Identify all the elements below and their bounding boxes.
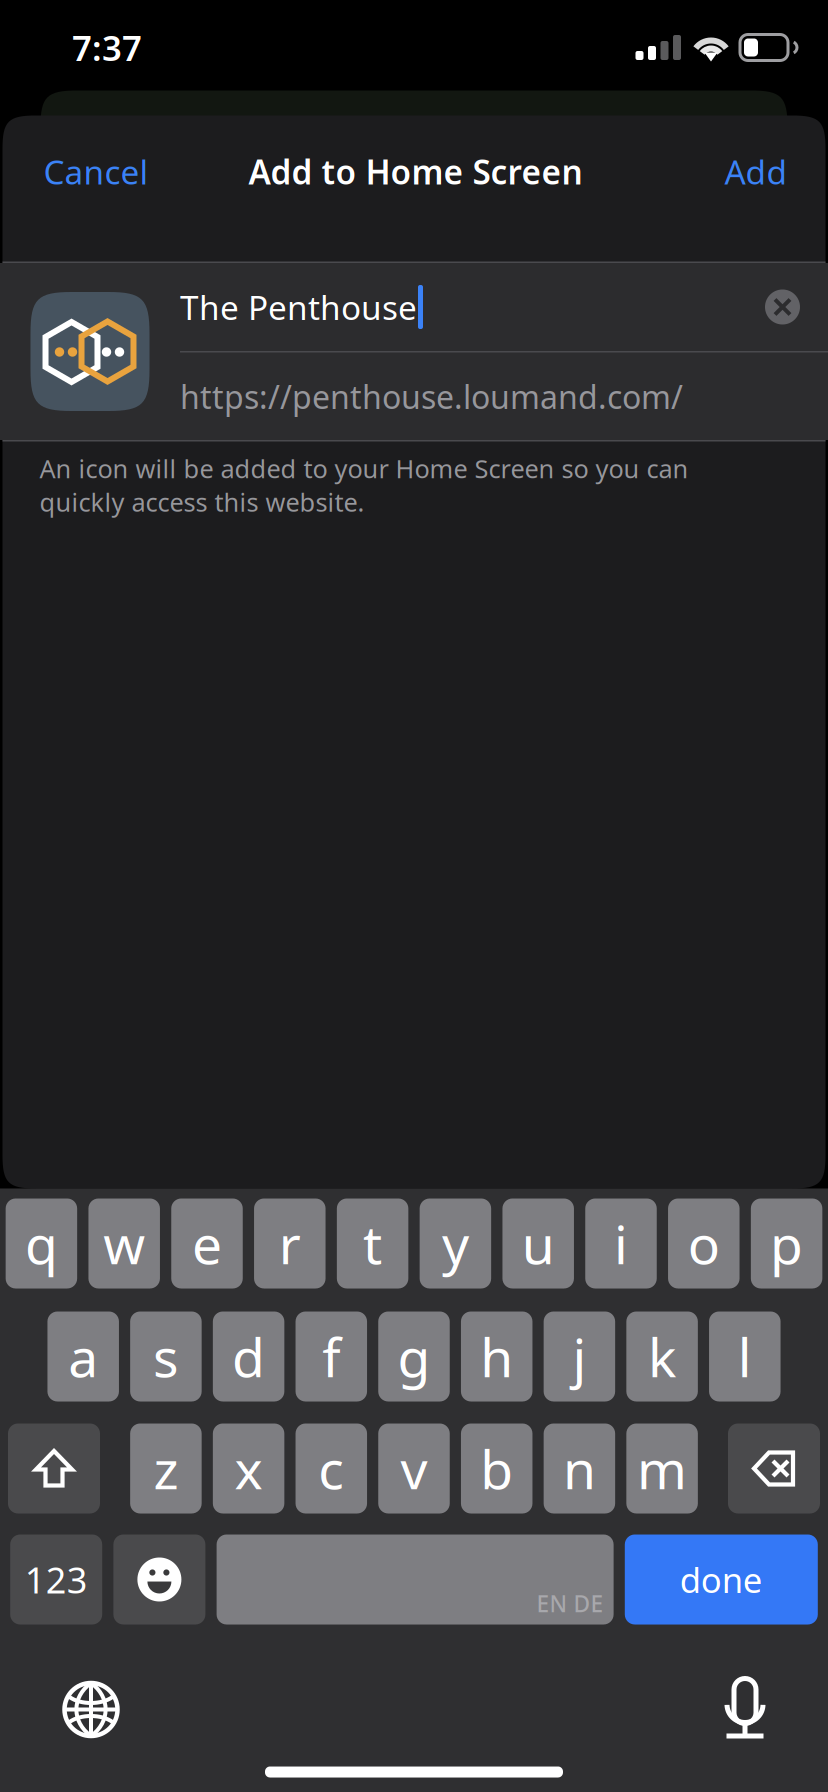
button[interactable]: t bbox=[337, 1198, 408, 1288]
staticText: i bbox=[614, 1208, 628, 1279]
staticText: t bbox=[363, 1208, 382, 1279]
staticText: j bbox=[572, 1321, 586, 1392]
button[interactable]: i bbox=[585, 1198, 657, 1288]
staticText: m bbox=[637, 1433, 687, 1504]
button[interactable]: y bbox=[420, 1198, 491, 1288]
button[interactable]: h bbox=[461, 1311, 532, 1401]
button[interactable]: c bbox=[295, 1423, 367, 1513]
button[interactable]: o bbox=[668, 1198, 739, 1288]
staticText: g bbox=[397, 1321, 430, 1392]
button[interactable]: w bbox=[88, 1198, 160, 1288]
button[interactable]: z bbox=[130, 1423, 202, 1513]
staticText: u bbox=[522, 1208, 555, 1279]
staticText: The Penthouse bbox=[180, 285, 417, 329]
button[interactable]: d bbox=[213, 1311, 284, 1401]
staticText: a bbox=[68, 1321, 98, 1392]
staticText: h bbox=[480, 1321, 513, 1392]
button[interactable]: k bbox=[626, 1311, 698, 1401]
staticText: f bbox=[322, 1321, 340, 1392]
staticText: https://penthouse.loumand.com/ bbox=[180, 375, 683, 418]
staticText: e bbox=[192, 1208, 222, 1279]
button[interactable]: f bbox=[296, 1311, 367, 1401]
button[interactable]: Emoji bbox=[113, 1534, 205, 1624]
staticText: EN DE bbox=[537, 1588, 604, 1618]
button[interactable]: Cancel bbox=[1, 115, 245, 227]
staticText: done bbox=[680, 1556, 763, 1602]
button[interactable]: Clear text bbox=[737, 263, 828, 351]
staticText: b bbox=[480, 1433, 513, 1504]
staticText: k bbox=[648, 1321, 676, 1392]
button[interactable]: Delete bbox=[728, 1423, 820, 1513]
button[interactable]: done bbox=[625, 1534, 818, 1624]
staticText: w bbox=[103, 1208, 145, 1279]
staticText: o bbox=[688, 1208, 720, 1279]
button[interactable]: r bbox=[254, 1198, 325, 1288]
button[interactable]: q bbox=[6, 1198, 77, 1288]
button[interactable]: n bbox=[544, 1423, 615, 1513]
staticText: n bbox=[563, 1433, 596, 1504]
staticText: s bbox=[153, 1321, 179, 1392]
button[interactable]: Next keyboard bbox=[37, 1655, 145, 1763]
staticText: l bbox=[738, 1321, 752, 1392]
button[interactable]: l bbox=[709, 1311, 780, 1401]
staticText: x bbox=[235, 1433, 263, 1504]
staticText: Add to Home Screen bbox=[248, 149, 582, 194]
button[interactable]: u bbox=[502, 1198, 574, 1288]
button[interactable]: v bbox=[378, 1423, 450, 1513]
button[interactable]: g bbox=[378, 1311, 450, 1401]
staticText: c bbox=[318, 1433, 344, 1504]
staticText: p bbox=[770, 1208, 803, 1279]
staticText: 123 bbox=[25, 1556, 88, 1603]
button[interactable]: Dictate bbox=[691, 1655, 799, 1763]
staticText: q bbox=[25, 1208, 58, 1279]
button[interactable]: Shift bbox=[8, 1423, 100, 1513]
staticText: r bbox=[279, 1208, 301, 1279]
staticText: Add bbox=[724, 149, 787, 194]
button[interactable]: m bbox=[626, 1423, 698, 1513]
button[interactable]: e bbox=[171, 1198, 243, 1288]
staticText: 7:37 bbox=[72, 24, 142, 70]
button[interactable]: x bbox=[213, 1423, 284, 1513]
button[interactable]: a bbox=[47, 1311, 119, 1401]
staticText: y bbox=[442, 1208, 469, 1279]
button[interactable]: Add bbox=[585, 115, 826, 227]
staticText: d bbox=[232, 1321, 265, 1392]
button[interactable]: p bbox=[751, 1198, 822, 1288]
button[interactable]: s bbox=[130, 1311, 202, 1401]
button[interactable]: b bbox=[461, 1423, 532, 1513]
staticText: z bbox=[153, 1433, 178, 1504]
staticText: An icon will be added to your Home Scree… bbox=[39, 451, 688, 519]
staticText: v bbox=[400, 1433, 427, 1504]
button[interactable]: 123 bbox=[10, 1534, 102, 1624]
button[interactable]: j bbox=[544, 1311, 615, 1401]
button[interactable]: space bbox=[217, 1534, 614, 1624]
staticText: Cancel bbox=[43, 149, 148, 194]
